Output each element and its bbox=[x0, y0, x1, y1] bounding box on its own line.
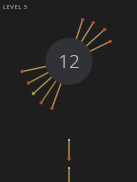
staticText: LEVEL 5 bbox=[3, 3, 28, 11]
staticText: 12 bbox=[58, 48, 80, 74]
button[interactable]: LEVEL 5 bbox=[3, 3, 28, 11]
button[interactable]: Shoot pin bbox=[0, 0, 137, 182]
